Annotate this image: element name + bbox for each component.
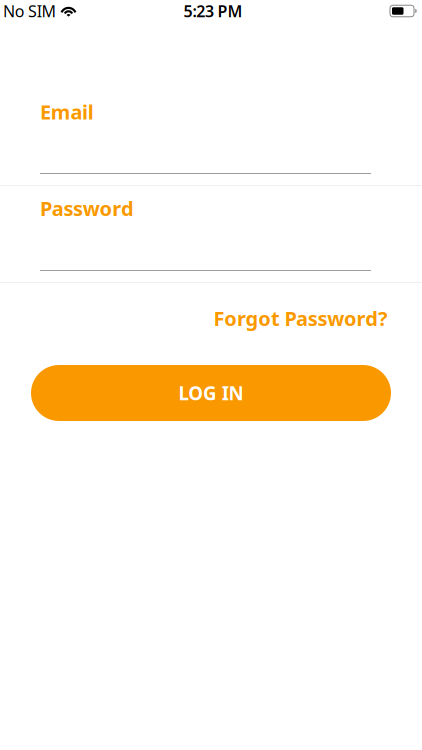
staticText: No SIM	[3, 0, 56, 22]
staticText: Forgot Password?	[213, 305, 388, 332]
staticText: LOG IN	[178, 381, 243, 405]
button[interactable]: LOG IN	[31, 365, 391, 421]
staticText: Password	[40, 195, 134, 222]
staticText: 5:23 PM	[184, 0, 242, 22]
staticText: Email	[40, 98, 94, 125]
button[interactable]: Forgot Password?	[213, 305, 388, 332]
